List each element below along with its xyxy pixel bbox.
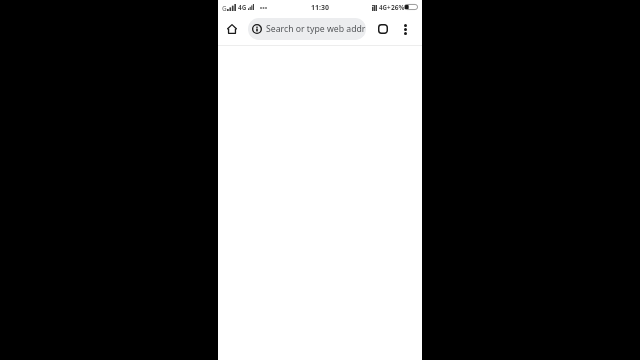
button[interactable]: Home (220, 17, 244, 41)
staticText: Search or type web addr (266, 23, 366, 35)
staticText: 26% (391, 3, 405, 12)
button[interactable]: More options (396, 17, 415, 41)
staticText: 11:30 (311, 3, 329, 13)
button[interactable]: Search or type web addr (248, 18, 366, 40)
button[interactable]: Tabs (371, 17, 395, 41)
staticText: 4G+ (379, 3, 391, 11)
staticText: G (222, 4, 227, 13)
staticText: 4G (238, 3, 247, 12)
